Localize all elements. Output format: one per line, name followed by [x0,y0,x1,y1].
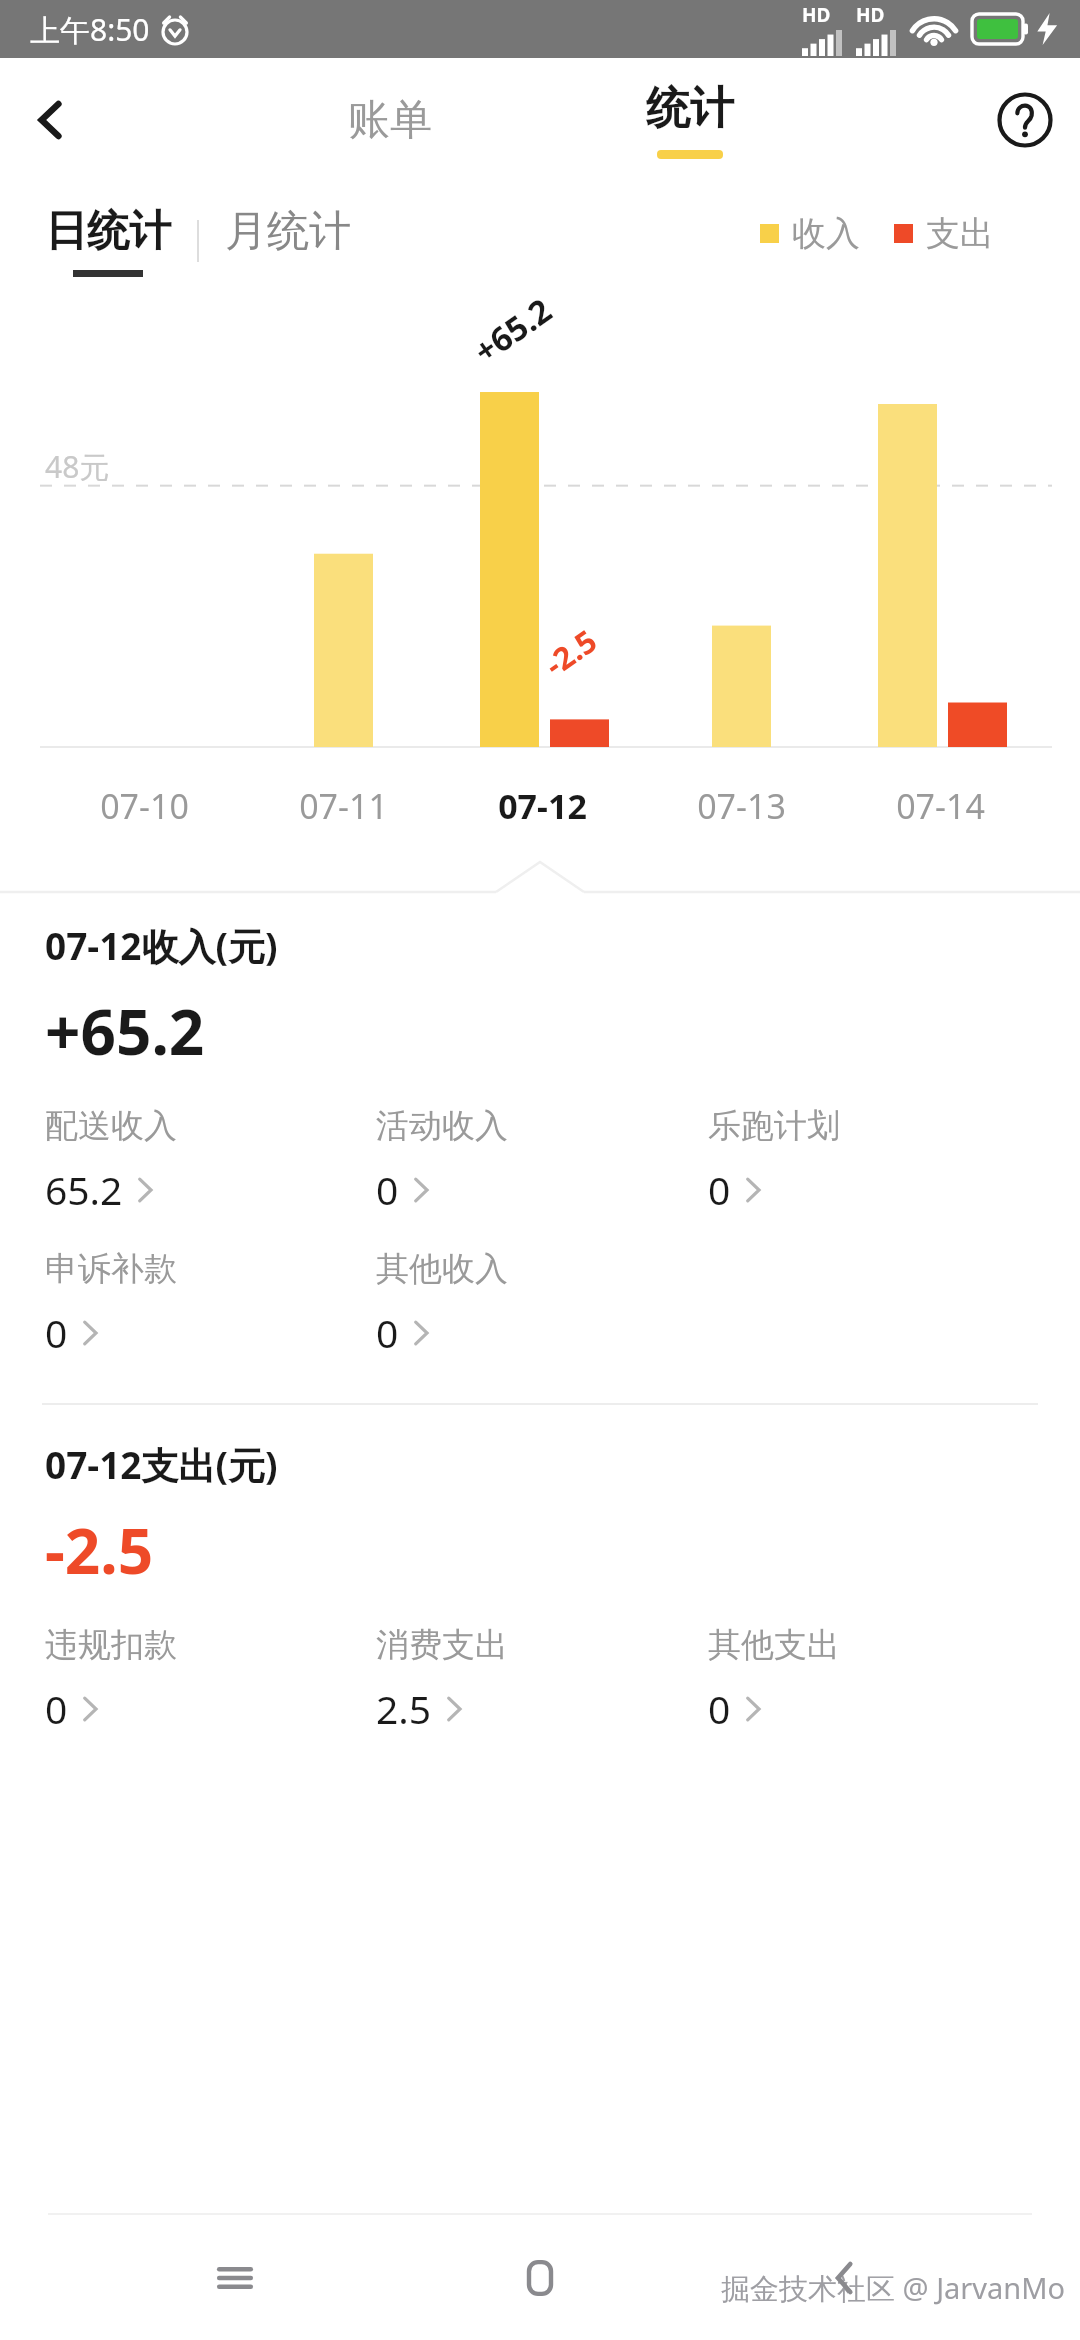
staticText: 65.2 [45,1163,123,1216]
button[interactable]: Home [470,2215,610,2340]
button[interactable]: Help [970,65,1080,175]
staticText: 0 [376,1163,399,1216]
button[interactable]: 07-14 [841,773,1040,839]
staticText: 07-12支出(元) [45,1439,278,1490]
staticText: 0 [45,1682,68,1735]
button[interactable]: 账单 [300,58,480,182]
staticText: 07-13 [697,783,786,829]
button[interactable]: 其他收入 [376,1248,518,1363]
button[interactable]: 月统计 [225,205,351,258]
staticText: 48元 [45,446,110,487]
staticText: 0 [45,1306,68,1359]
button[interactable]: 统计 [600,58,780,182]
staticText: 0 [708,1682,731,1735]
button[interactable]: 消费支出 [376,1624,518,1739]
button[interactable]: Back [775,2215,915,2340]
staticText: 07-14 [896,783,985,829]
staticText: 违规扣款 [45,1624,177,1666]
staticText: 申诉补款 [45,1248,177,1290]
staticText: 07-12收入(元) [45,920,278,971]
button[interactable]: 违规扣款 [45,1624,187,1739]
staticText: 07-10 [100,783,189,829]
staticText: 2.5 [376,1682,432,1735]
staticText: 活动收入 [376,1105,508,1147]
staticText: 乐跑计划 [708,1105,840,1147]
button[interactable]: 07-10 [45,773,244,839]
staticText: 掘金技术社区 @ JarvanMo [721,2268,1066,2308]
staticText: 消费支出 [376,1624,508,1666]
staticText: 07-11 [299,783,388,829]
staticText: 日统计 [45,205,171,258]
staticText: 统计 [646,81,734,136]
staticText: +65.2 [465,288,560,373]
staticText: 账单 [348,94,432,147]
staticText: 配送收入 [45,1105,177,1147]
button[interactable]: 配送收入 [45,1105,187,1220]
button[interactable]: Back [0,68,104,172]
staticText: -2.5 [45,1508,154,1592]
staticText: +65.2 [45,989,205,1073]
staticText: 上午8:50 [30,9,150,50]
button[interactable]: Recent apps [165,2215,305,2340]
staticText: 0 [376,1306,399,1359]
staticText: 其他收入 [376,1248,508,1290]
button[interactable]: 07-11 [244,773,443,839]
button[interactable]: 其他支出 [708,1624,850,1739]
button[interactable]: 乐跑计划 [708,1105,850,1220]
staticText: 月统计 [225,205,351,258]
staticText: 0 [708,1163,731,1216]
staticText: HD [802,2,831,28]
button[interactable]: 活动收入 [376,1105,518,1220]
staticText: 其他支出 [708,1624,840,1666]
staticText: 支出 [926,212,994,255]
staticText: 07-12 [498,783,587,829]
staticText: -2.5 [536,619,605,685]
staticText: 收入 [792,212,860,255]
staticText: HD [856,2,885,28]
button[interactable]: 申诉补款 [45,1248,187,1363]
button[interactable]: 日统计 [45,205,171,277]
button[interactable]: 07-12 [443,773,642,839]
button[interactable]: 07-13 [642,773,841,839]
